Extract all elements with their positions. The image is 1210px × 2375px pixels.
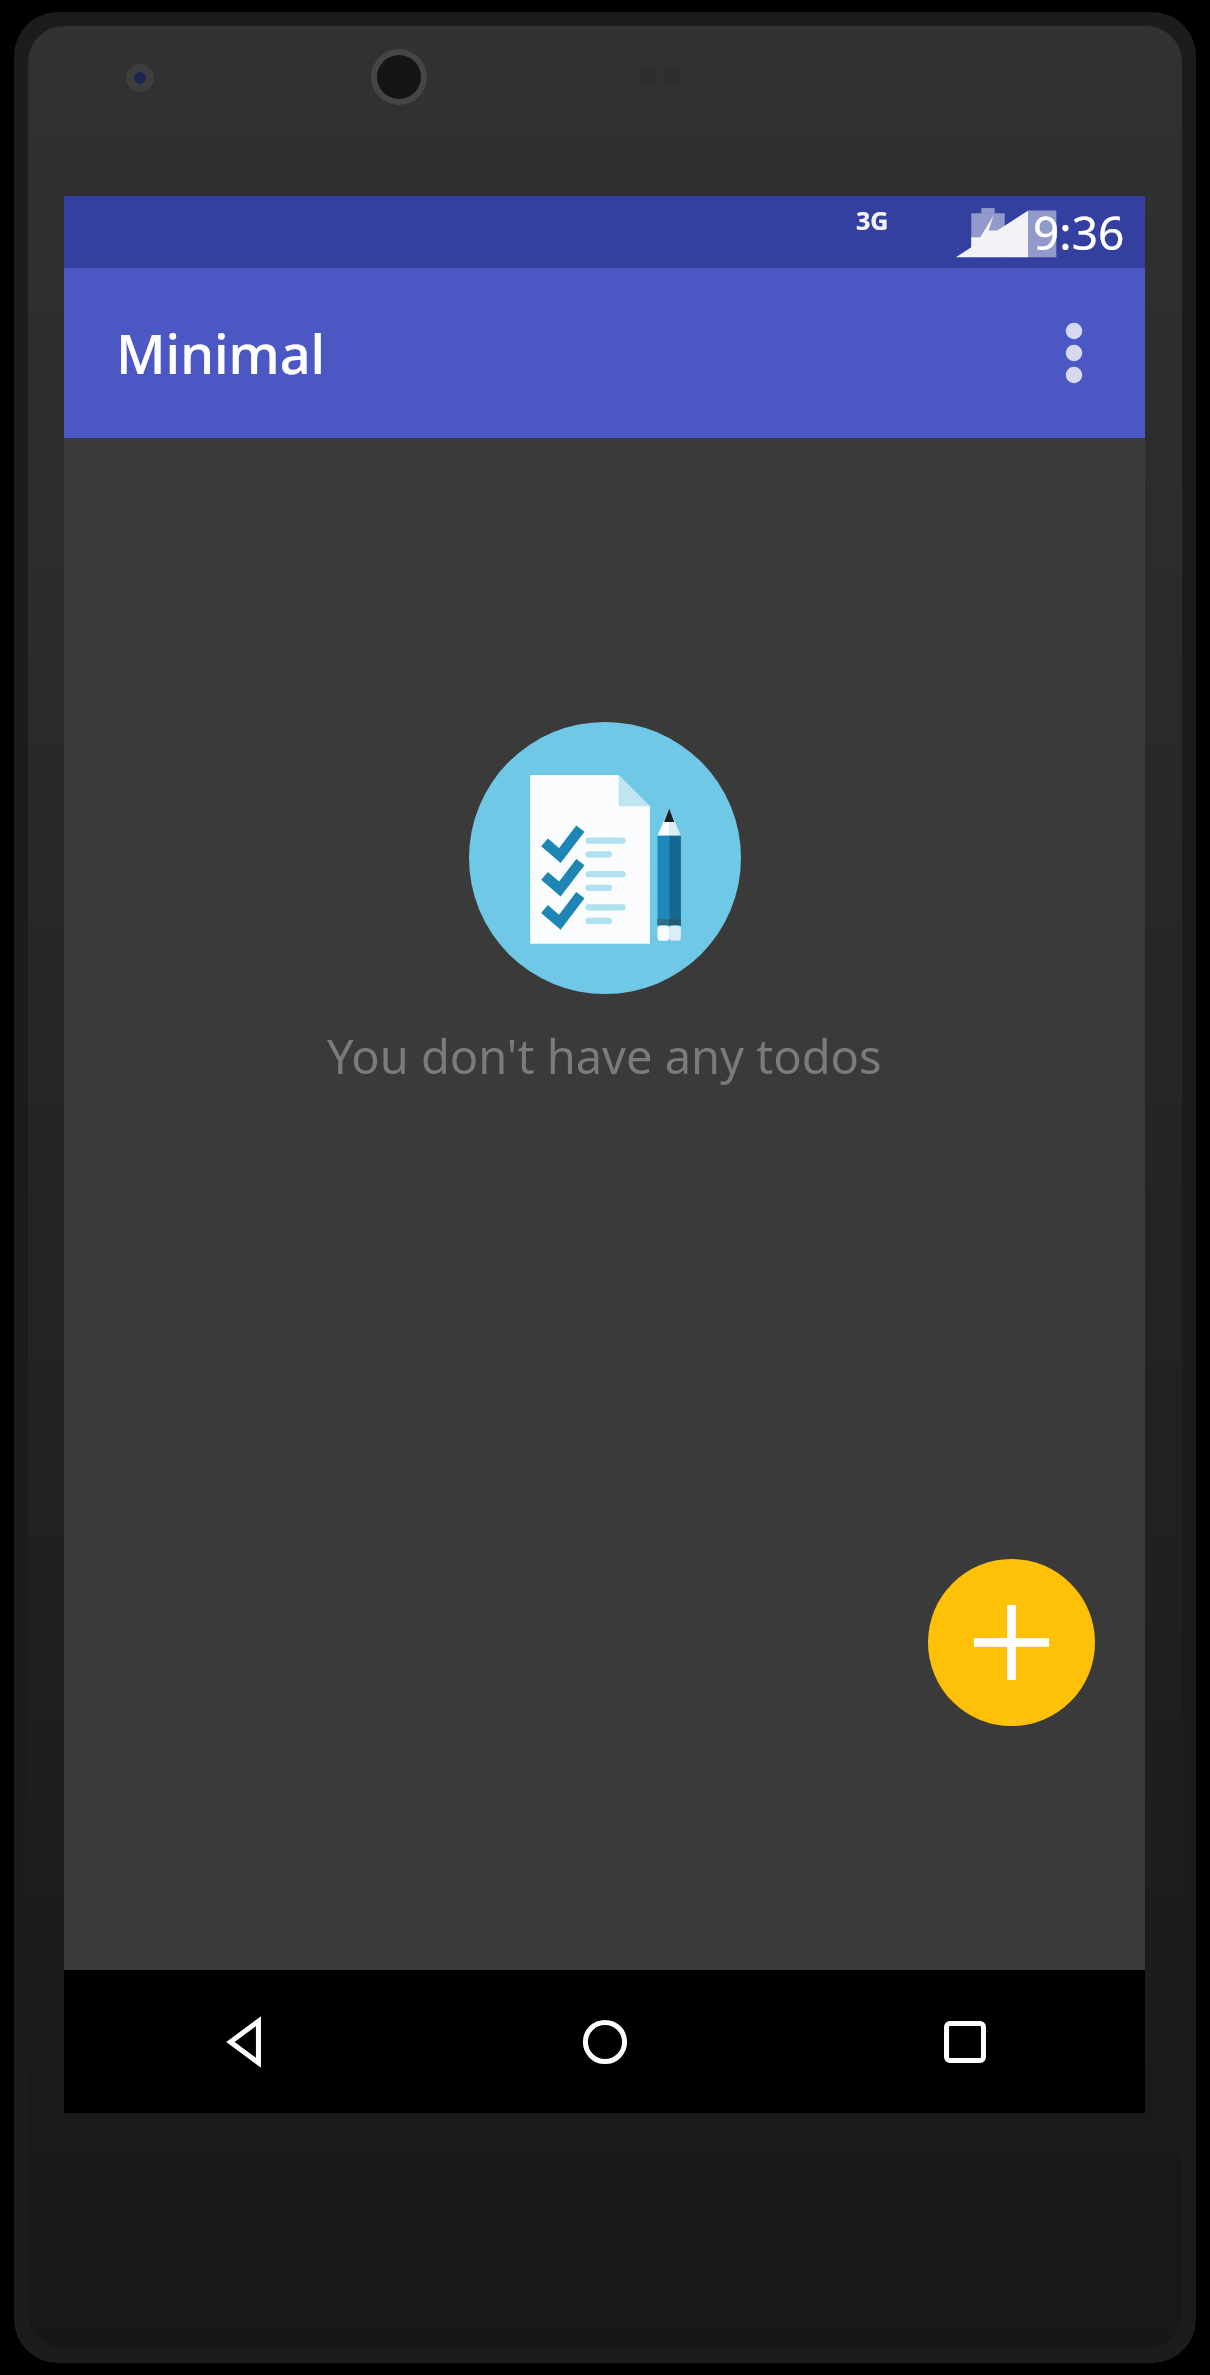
button[interactable]: Back xyxy=(64,1970,425,2113)
staticText: You don't have any todos xyxy=(327,1024,882,1088)
button[interactable]: Add todo xyxy=(928,1559,1095,1726)
staticText: Minimal xyxy=(116,316,326,390)
button[interactable]: Home xyxy=(425,1970,785,2113)
staticText: 3G xyxy=(856,203,889,237)
button[interactable]: Recents xyxy=(785,1970,1145,2113)
staticText: 9:36 xyxy=(1033,201,1125,264)
button[interactable]: More options xyxy=(1019,298,1129,408)
